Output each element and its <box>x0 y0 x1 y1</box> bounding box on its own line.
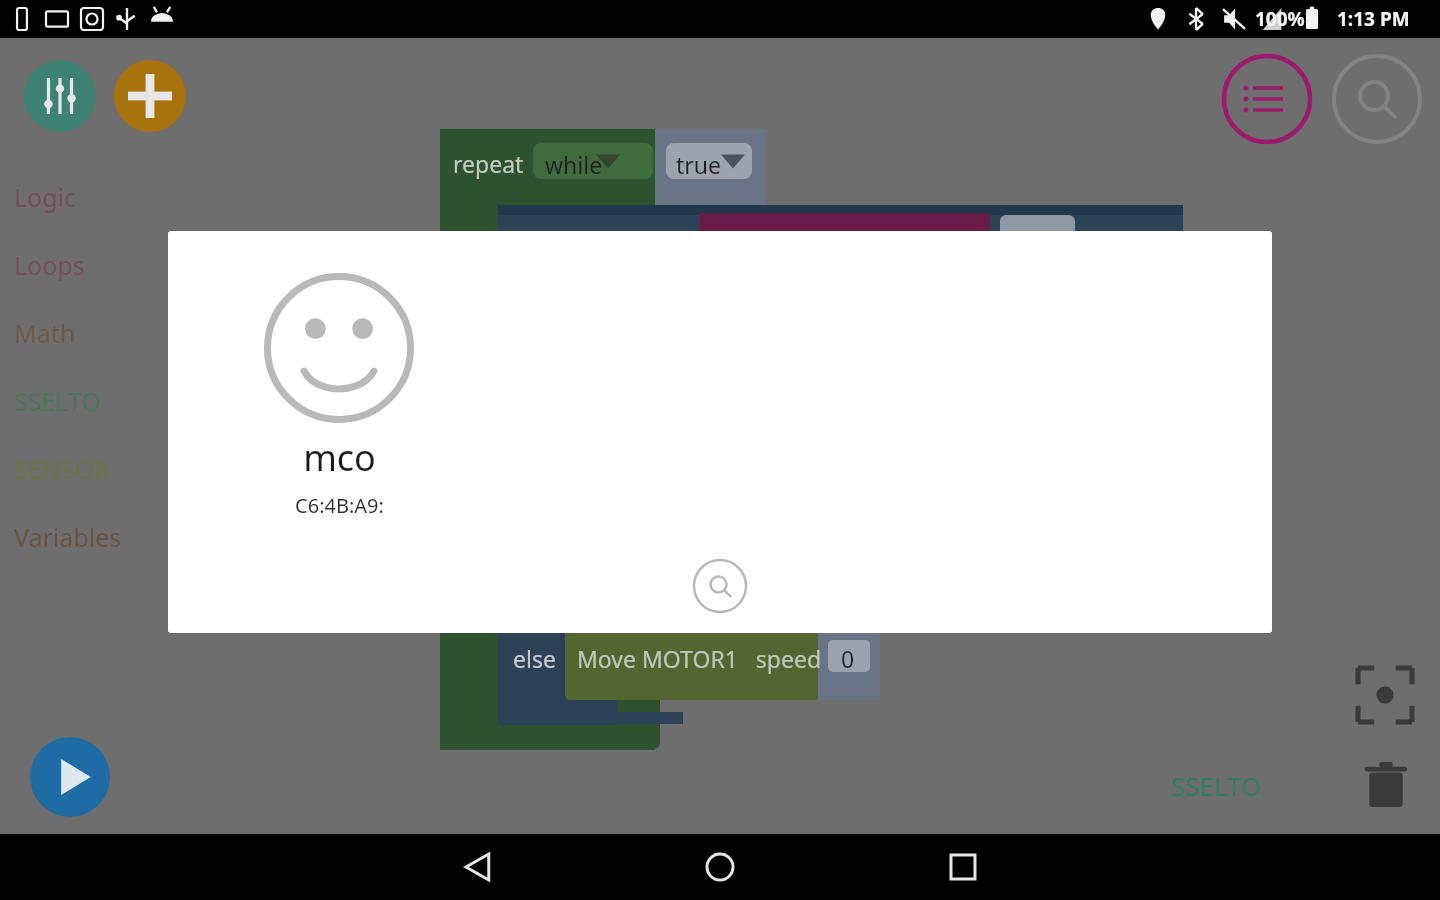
staticText: SSELTO <box>14 384 101 418</box>
staticText: 1:13 PM <box>1337 6 1410 32</box>
staticText: SENSOR <box>14 452 110 486</box>
button[interactable]: Back <box>444 834 514 900</box>
staticText: C6:4B:A9: <box>295 492 384 519</box>
button[interactable]: Logic <box>0 172 150 222</box>
button[interactable]: Settings sliders <box>24 60 96 132</box>
staticText: true <box>676 149 721 180</box>
staticText: mco <box>303 433 376 482</box>
button[interactable]: Run program <box>30 737 110 817</box>
button[interactable]: mco <box>214 273 464 519</box>
staticText: Variables <box>14 520 122 554</box>
button[interactable]: Recent apps <box>928 834 998 900</box>
staticText: Math <box>14 316 76 350</box>
button[interactable]: Search <box>1330 52 1424 146</box>
button[interactable]: Delete <box>1356 755 1416 815</box>
button[interactable]: Variables <box>0 512 150 562</box>
staticText: else <box>513 643 556 674</box>
staticText: Loops <box>14 248 85 282</box>
button[interactable]: Math <box>0 308 150 358</box>
staticText: SSELTO <box>1171 768 1262 803</box>
button[interactable]: Center blocks <box>1352 662 1418 728</box>
staticText: repeat <box>453 148 524 179</box>
staticText: Move MOTOR1 speed <box>577 643 822 674</box>
button[interactable]: SSELTO <box>0 376 150 426</box>
button[interactable]: Block list <box>1220 52 1314 146</box>
button[interactable]: Scan for devices <box>692 558 748 614</box>
staticText: 100% <box>1255 6 1305 32</box>
button[interactable]: Add block <box>114 60 186 132</box>
staticText: while <box>545 149 603 180</box>
staticText: Logic <box>14 180 77 214</box>
staticText: 0 <box>841 643 855 674</box>
button[interactable]: Loops <box>0 240 150 290</box>
button[interactable]: SSELTO <box>1136 762 1296 808</box>
button[interactable]: Home <box>685 834 755 900</box>
button[interactable]: SENSOR <box>0 444 150 494</box>
